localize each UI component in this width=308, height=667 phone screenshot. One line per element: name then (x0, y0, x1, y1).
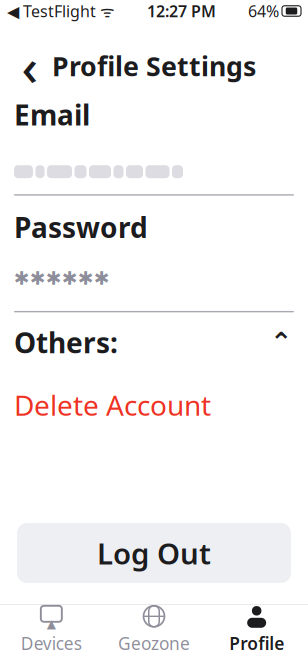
button[interactable]: Others: (14, 312, 294, 358)
staticText: Delete Account (14, 386, 211, 424)
staticText: ◀ TestFlight (7, 0, 96, 22)
staticText: 64% (248, 0, 279, 22)
staticText: ▲ (47, 617, 56, 631)
staticText: ✱✱✱✱✱✱ (14, 268, 110, 289)
button[interactable]: ▲ (0, 605, 103, 654)
staticText: ⌃ (270, 327, 292, 357)
button[interactable]: Profile (205, 605, 308, 654)
staticText: Profile Settings (52, 48, 256, 84)
staticText: Log Out (97, 533, 211, 572)
staticText: Email (14, 96, 90, 133)
staticText: 12:27 PM (147, 0, 216, 22)
staticText: ‹ (21, 32, 38, 100)
staticText: ᯤ (96, 0, 115, 22)
button[interactable]: Back (8, 44, 52, 88)
button[interactable]: Delete Account (14, 358, 211, 430)
staticText: Others: (14, 324, 118, 361)
staticText: Password (14, 209, 148, 246)
staticText: Devices (21, 632, 82, 655)
staticText: Geozone (118, 632, 190, 655)
staticText: Profile (229, 632, 284, 655)
button[interactable]: Log Out (17, 523, 291, 583)
button[interactable]: Geozone (103, 605, 205, 654)
